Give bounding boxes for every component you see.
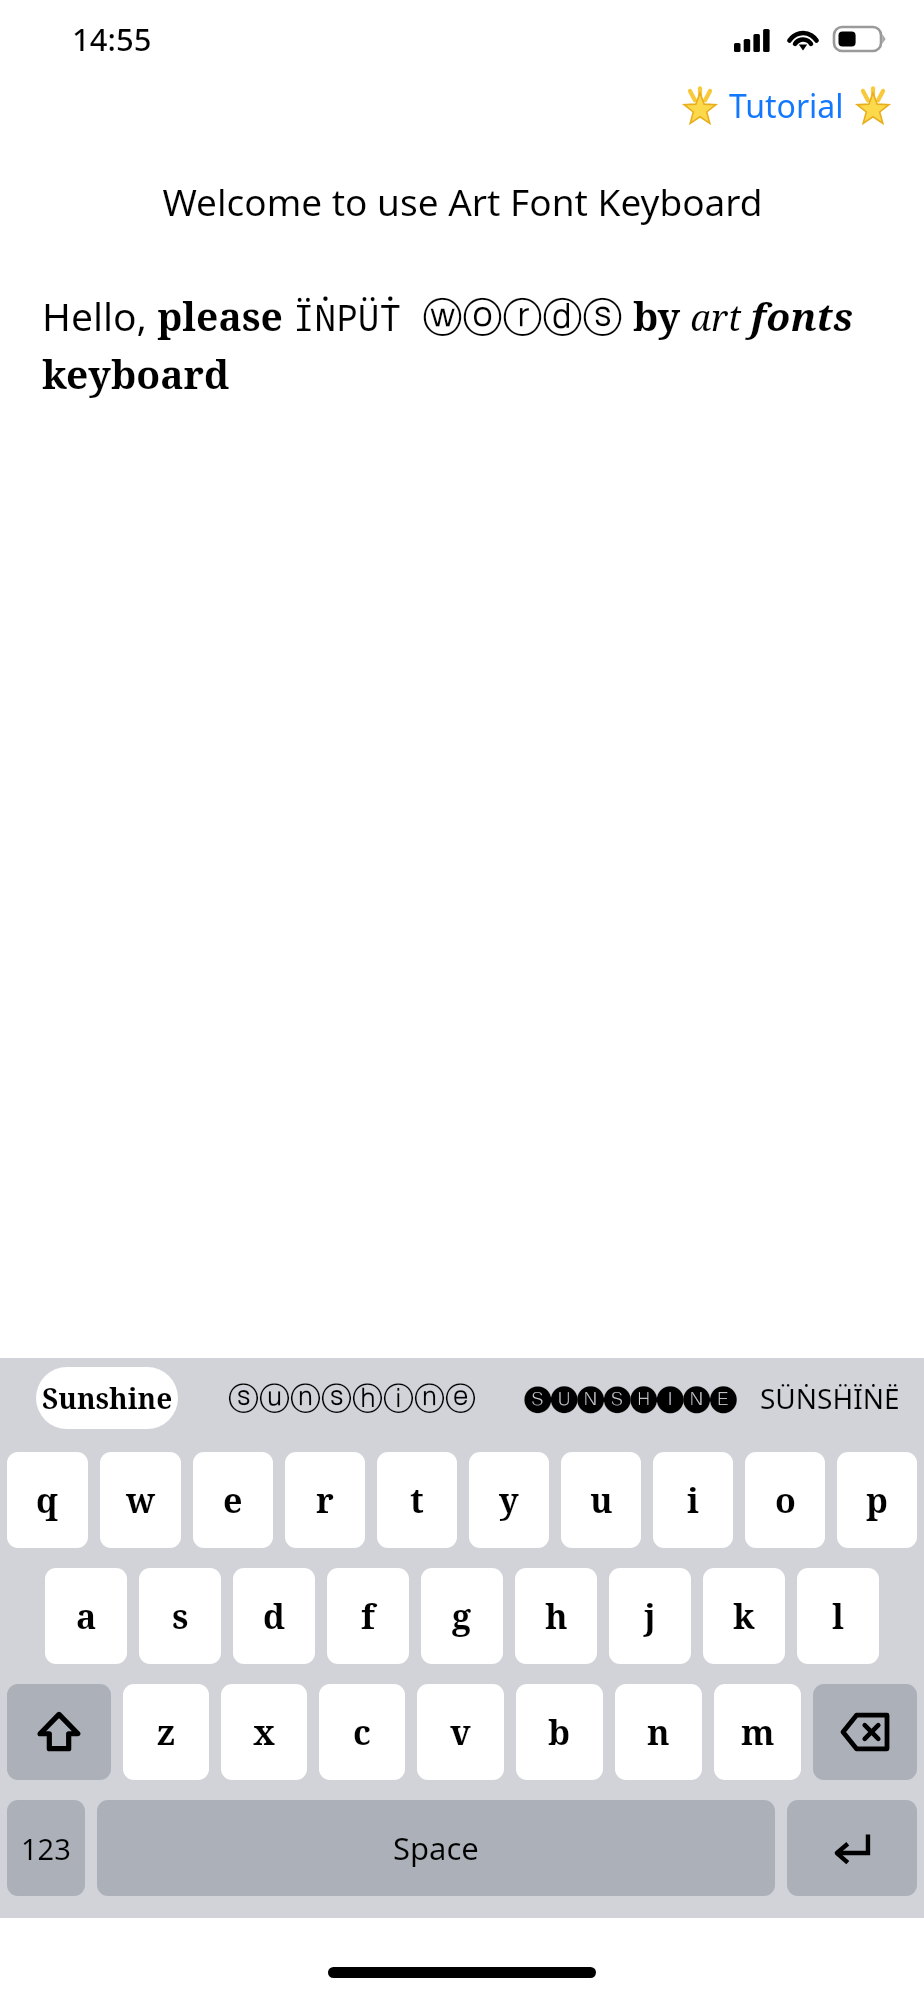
staticText: Welcome to use Art Font Keyboard xyxy=(162,176,763,226)
button[interactable]: o xyxy=(745,1452,825,1548)
staticText: y xyxy=(499,1477,519,1523)
button[interactable]: q xyxy=(7,1452,88,1548)
button[interactable]: n xyxy=(615,1684,702,1780)
button[interactable]: d xyxy=(233,1568,315,1664)
staticText: ⓢⓤⓝⓢⓗⓘⓝⓔ xyxy=(228,1379,476,1418)
button[interactable]: h xyxy=(515,1568,597,1664)
staticText: j xyxy=(644,1593,656,1639)
button[interactable]: u xyxy=(561,1452,641,1548)
staticText: h xyxy=(545,1593,568,1639)
staticText: Space xyxy=(393,1827,479,1869)
staticText: n xyxy=(647,1709,670,1755)
staticText: c xyxy=(353,1709,371,1755)
staticText: 🅢🅤🅝🅢🅗🅘🅝🅔 xyxy=(524,1385,737,1411)
button[interactable]: f xyxy=(327,1568,409,1664)
staticText: b xyxy=(548,1709,571,1755)
button[interactable]: m xyxy=(714,1684,801,1780)
button[interactable]: i xyxy=(653,1452,733,1548)
button[interactable]: t xyxy=(377,1452,457,1548)
staticText: d xyxy=(263,1593,286,1639)
staticText: o xyxy=(775,1477,796,1523)
staticText: w xyxy=(126,1477,156,1523)
staticText: a xyxy=(76,1593,97,1639)
staticText: k xyxy=(733,1593,755,1639)
staticText: q xyxy=(36,1477,59,1523)
staticText: g xyxy=(452,1593,472,1639)
staticText: v xyxy=(450,1709,471,1755)
staticText: i xyxy=(687,1477,699,1523)
staticText: l xyxy=(832,1593,844,1639)
button[interactable]: g xyxy=(421,1568,503,1664)
staticText: z xyxy=(157,1709,175,1755)
button[interactable]: ⓢⓤⓝⓢⓗⓘⓝⓔ xyxy=(228,1379,476,1418)
staticText: r xyxy=(316,1477,334,1523)
staticText: Tutorial xyxy=(729,84,844,128)
button[interactable]: s xyxy=(139,1568,221,1664)
staticText: SÜṄSḦÏṄË xyxy=(760,1379,900,1417)
button[interactable]: Hello, please ÏṄPÜṪ ⓦⓞⓡⓓⓢ by art fonts k… xyxy=(42,288,882,400)
button[interactable]: j xyxy=(609,1568,691,1664)
button[interactable]: Return xyxy=(787,1800,917,1896)
button[interactable]: a xyxy=(45,1568,127,1664)
button[interactable]: v xyxy=(417,1684,504,1780)
staticText: p xyxy=(866,1477,888,1523)
staticText: f xyxy=(361,1593,375,1639)
button[interactable]: x xyxy=(221,1684,307,1780)
staticText: s xyxy=(172,1593,189,1639)
staticText: t xyxy=(410,1477,424,1523)
staticText: 14:55 xyxy=(72,18,152,60)
button[interactable]: k xyxy=(703,1568,785,1664)
button[interactable]: z xyxy=(123,1684,209,1780)
button[interactable]: Shift xyxy=(7,1684,111,1780)
button[interactable]: w xyxy=(100,1452,181,1548)
staticText: m xyxy=(741,1709,775,1755)
button[interactable]: Backspace xyxy=(813,1684,917,1780)
staticText: Sunshine xyxy=(42,1379,173,1417)
button[interactable]: c xyxy=(319,1684,405,1780)
button[interactable]: Space xyxy=(97,1800,775,1896)
button[interactable]: p xyxy=(837,1452,917,1548)
staticText: e xyxy=(223,1477,243,1523)
button[interactable]: y xyxy=(469,1452,549,1548)
button[interactable]: l xyxy=(797,1568,879,1664)
button[interactable]: Sunshine xyxy=(36,1367,178,1429)
button[interactable]: r xyxy=(285,1452,365,1548)
button[interactable]: b xyxy=(516,1684,603,1780)
button[interactable]: 🅢🅤🅝🅢🅗🅘🅝🅔 xyxy=(524,1385,737,1411)
button[interactable]: SÜṄSḦÏṄË xyxy=(760,1379,900,1417)
button[interactable]: e xyxy=(193,1452,273,1548)
staticText: x xyxy=(253,1709,275,1755)
button[interactable]: 123 xyxy=(7,1800,85,1896)
button[interactable]: Tutorial xyxy=(675,78,898,134)
staticText: 123 xyxy=(21,1829,71,1868)
staticText: Hello, please ÏṄPÜṪ ⓦⓞⓡⓓⓢ by art fonts k… xyxy=(42,288,882,400)
staticText: u xyxy=(590,1477,613,1523)
